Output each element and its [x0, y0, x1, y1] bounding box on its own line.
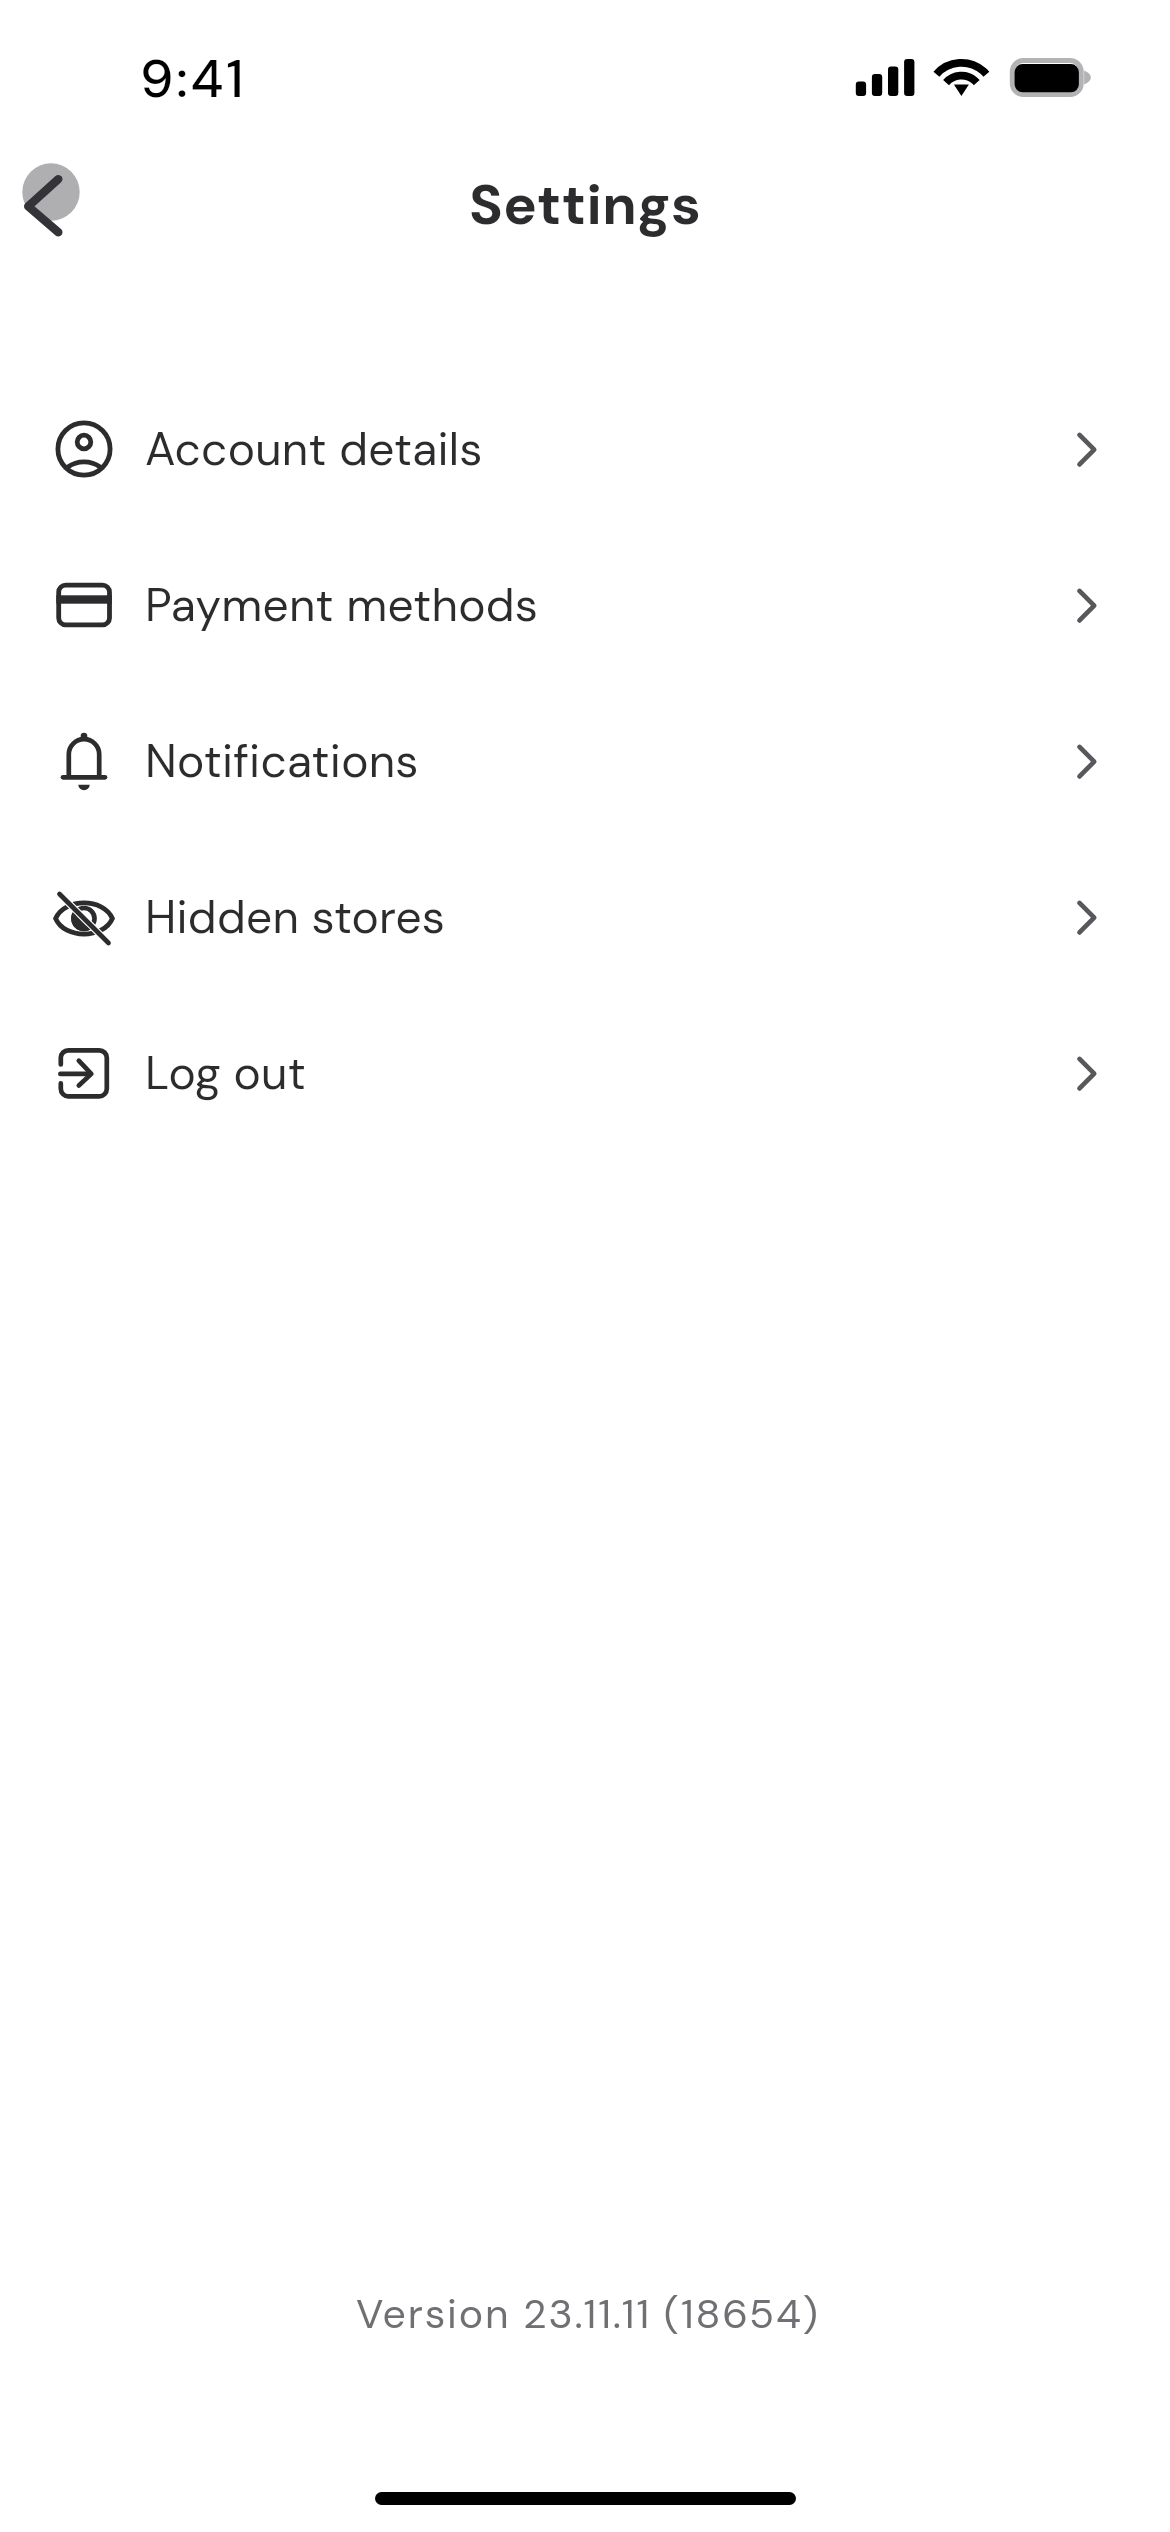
- button[interactable]: Back: [7, 148, 95, 236]
- staticText: 9:41: [140, 44, 247, 113]
- staticText: Version 23.11.11 (18654): [356, 2287, 820, 2340]
- button[interactable]: Log out: [0, 995, 1170, 1151]
- button[interactable]: Payment methods: [0, 527, 1170, 683]
- staticText: Payment methods: [145, 575, 1071, 635]
- staticText: Settings: [469, 168, 702, 241]
- staticText: Account details: [145, 419, 1071, 479]
- staticText: Log out: [145, 1043, 1071, 1103]
- button[interactable]: Notifications: [0, 683, 1170, 839]
- staticText: Notifications: [145, 731, 1071, 791]
- button[interactable]: Hidden stores: [0, 839, 1170, 995]
- button[interactable]: Account details: [0, 371, 1170, 527]
- staticText: Hidden stores: [145, 887, 1071, 947]
